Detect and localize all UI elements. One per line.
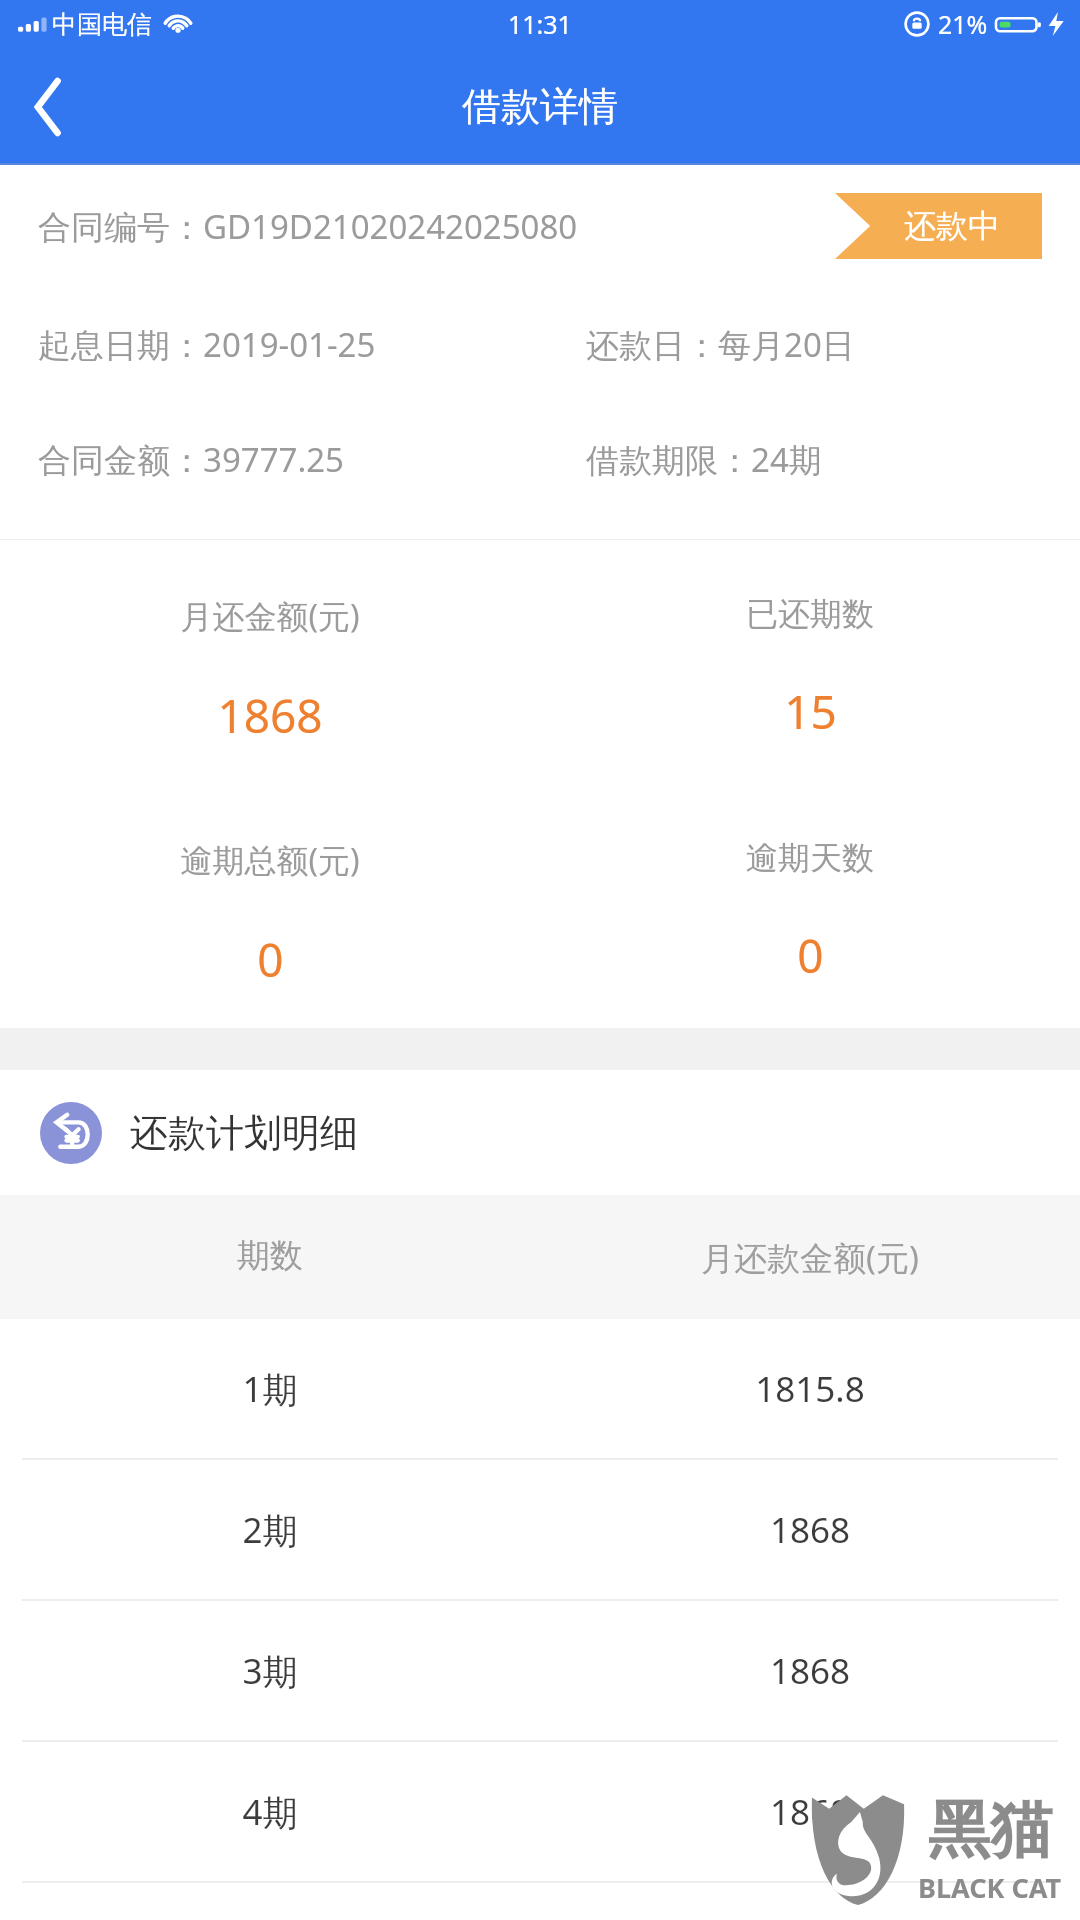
staticText: 0 — [257, 928, 284, 991]
staticText: 月还款金额(元) — [540, 1235, 1080, 1280]
staticText: 借款期限：24期 — [586, 437, 822, 482]
staticText: 1868 — [540, 1788, 1080, 1836]
staticText: 11:31 — [508, 7, 572, 41]
staticText: 1815.8 — [540, 1365, 1080, 1413]
staticText: 逾期天数 — [746, 838, 874, 878]
staticText: 借款详情 — [462, 82, 618, 131]
button[interactable]: 3期 — [0, 1601, 1080, 1740]
staticText: 期数 — [0, 1235, 540, 1277]
staticText: 中国电信 — [52, 9, 152, 40]
button[interactable]: 1期 — [0, 1319, 1080, 1458]
button[interactable]: 4期 — [0, 1742, 1080, 1881]
staticText: 月还金额(元) — [180, 594, 360, 638]
staticText: 逾期总额(元) — [180, 838, 360, 882]
staticText: 1868 — [217, 684, 323, 747]
staticText: 起息日期：2019-01-25 — [38, 322, 376, 367]
staticText: 1868 — [540, 1647, 1080, 1695]
staticText: 合同金额：39777.25 — [38, 437, 344, 482]
staticText: BLACK CAT — [918, 1869, 1062, 1906]
button[interactable]: Back — [0, 59, 96, 155]
staticText: 已还期数 — [746, 594, 874, 634]
staticText: 15 — [784, 680, 837, 743]
staticText: 还款计划明细 — [130, 1109, 358, 1157]
staticText: 还款日：每月20日 — [586, 322, 855, 367]
staticText: 合同编号：GD19D21020242025080 — [38, 204, 578, 249]
button[interactable]: 2期 — [0, 1460, 1080, 1599]
staticText: 2期 — [0, 1506, 540, 1554]
staticText: 4期 — [0, 1788, 540, 1836]
button[interactable]: 还款中 — [835, 193, 1042, 259]
staticText: 1期 — [0, 1365, 540, 1413]
staticText: 0 — [797, 924, 824, 987]
staticText: 还款中 — [904, 206, 1000, 246]
staticText: 1868 — [540, 1506, 1080, 1554]
staticText: 21% — [938, 7, 988, 41]
staticText: 3期 — [0, 1647, 540, 1695]
button[interactable]: 还款计划明细 — [0, 1070, 1080, 1195]
staticText: 黑猫 — [928, 1791, 1052, 1869]
